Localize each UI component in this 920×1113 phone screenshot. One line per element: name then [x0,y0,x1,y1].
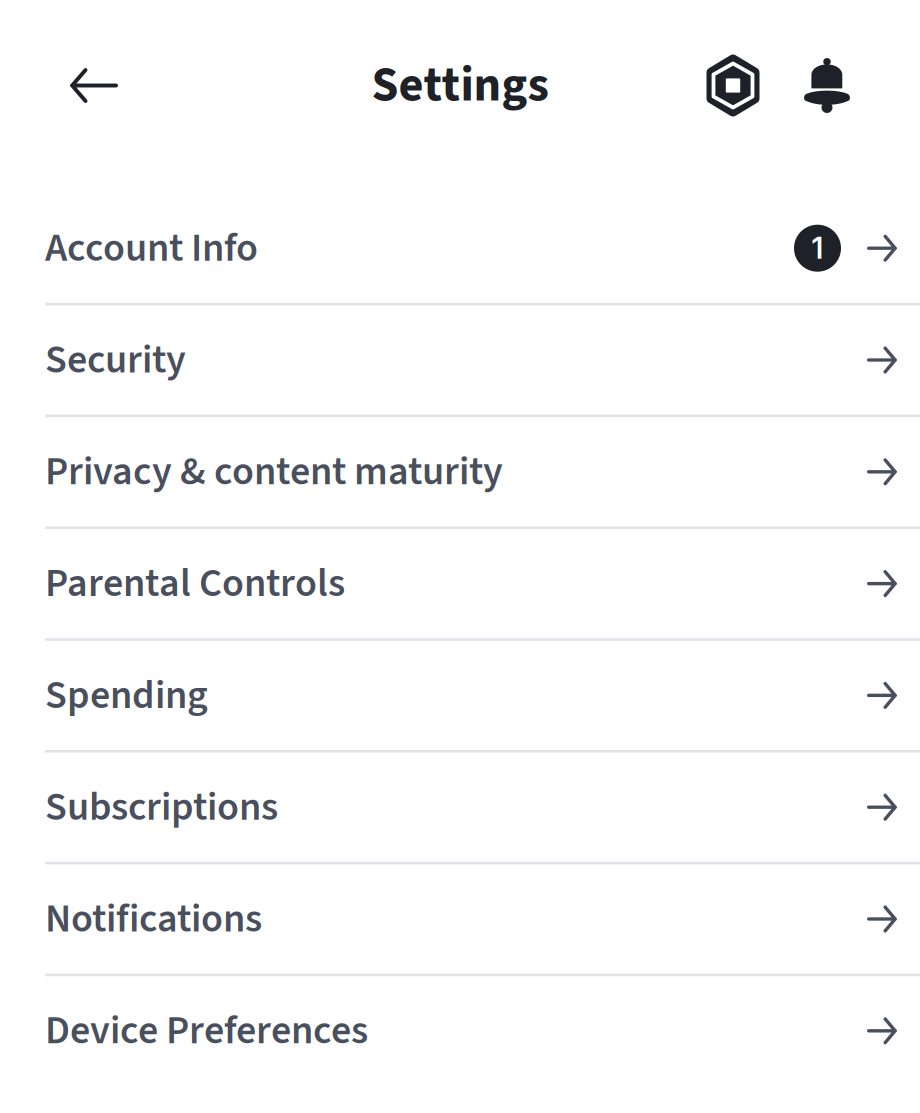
staticText: Subscriptions [45,779,278,836]
staticText: Privacy & content maturity [45,443,503,500]
staticText: Spending [45,667,208,724]
staticText: Settings [371,51,548,120]
staticText: Security [45,331,186,388]
staticText: Notifications [45,890,262,947]
button[interactable]: Spending [0,641,920,750]
staticText: Account Info [45,220,258,277]
button[interactable]: Privacy & content maturity [0,417,920,526]
button[interactable]: Parental Controls [0,529,920,638]
button[interactable]: Subscriptions [0,753,920,862]
staticText: Device Preferences [45,1002,368,1059]
button[interactable]: Notifications [0,864,920,974]
staticText: 1 [811,230,823,266]
button[interactable]: Roblox [697,49,769,121]
button[interactable]: Account Info [0,194,920,303]
button[interactable]: Notifications [791,49,863,121]
staticText: Parental Controls [45,555,345,612]
button[interactable]: Back [58,49,130,121]
button[interactable]: Device Preferences [0,976,920,1085]
button[interactable]: Security [0,305,920,415]
